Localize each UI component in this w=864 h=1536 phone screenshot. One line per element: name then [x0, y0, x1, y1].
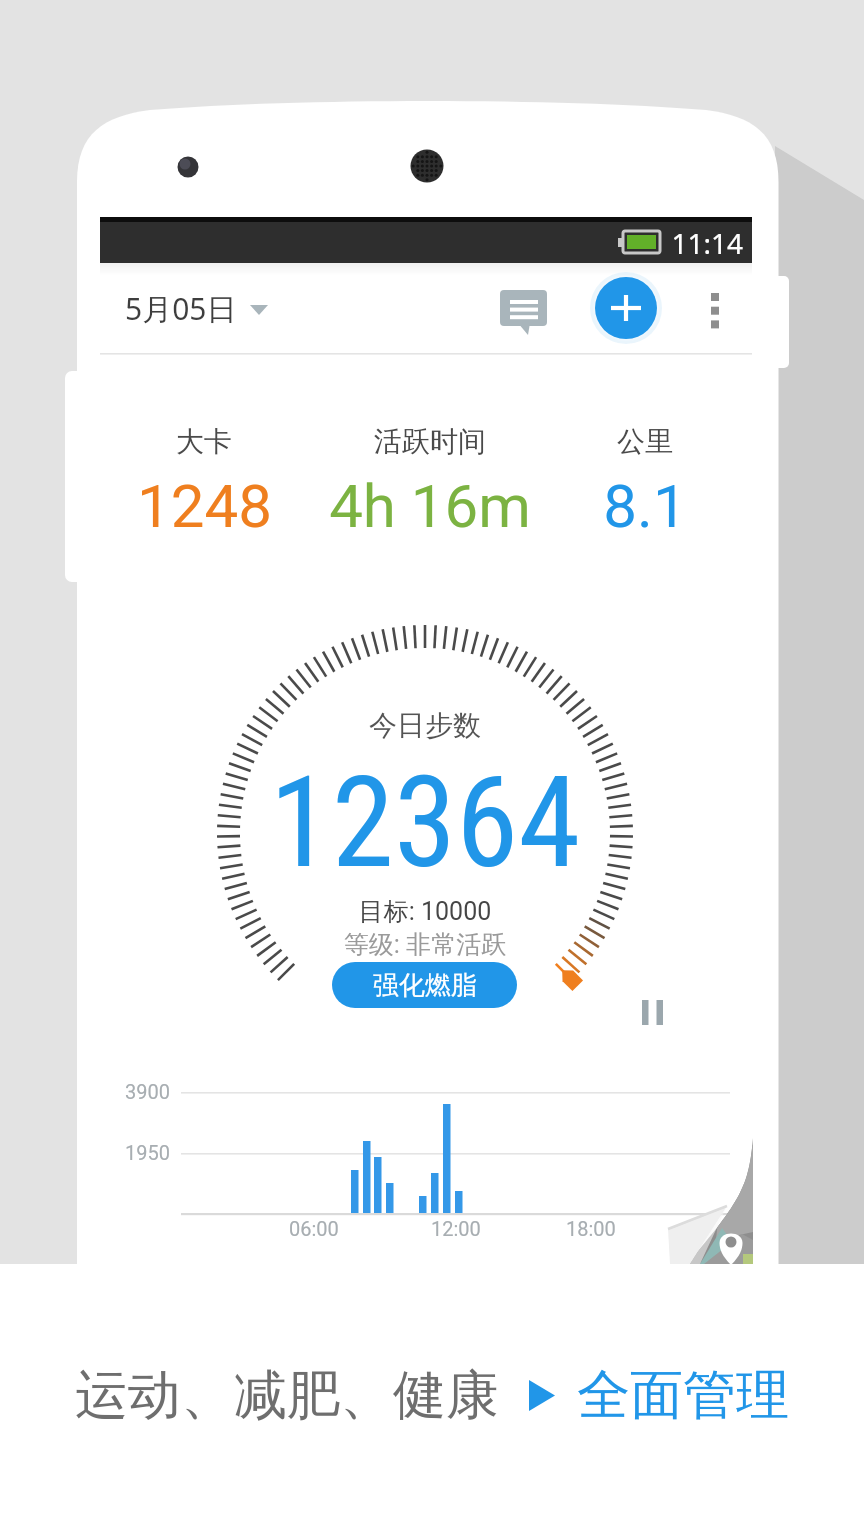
button[interactable]: Add [595, 277, 657, 339]
staticText: 1248 [137, 471, 272, 541]
staticText: 活跃时间 [374, 424, 486, 459]
staticText: 5月05日 [125, 288, 237, 329]
button[interactable]: 活跃时间 [300, 424, 560, 541]
staticText: 今日步数 [125, 708, 725, 743]
button[interactable]: 大卡 [74, 424, 334, 541]
staticText: 4h 16m [329, 471, 531, 541]
staticText: 公里 [617, 424, 673, 459]
button[interactable]: Pause [628, 986, 676, 1036]
staticText: 8.1 [603, 471, 687, 541]
button[interactable]: More options [689, 277, 741, 345]
staticText: 12:00 [431, 1217, 481, 1240]
staticText: 18:00 [566, 1217, 616, 1240]
staticText: 强化燃脂 [373, 969, 477, 1002]
staticText: 11:14 [582, 224, 743, 262]
staticText: 06:00 [289, 1217, 339, 1240]
staticText: 全面管理 [577, 1362, 789, 1429]
staticText: 大卡 [176, 424, 232, 459]
button[interactable]: 公里 [515, 424, 775, 541]
button[interactable]: 强化燃脂 [332, 962, 517, 1008]
button[interactable]: Messages [490, 280, 556, 346]
button[interactable]: 5月05日 [117, 280, 276, 337]
staticText: 目标: 10000 [125, 896, 725, 927]
staticText: 3900 [125, 1080, 170, 1103]
staticText: 12364 [125, 749, 725, 897]
staticText: 1950 [125, 1141, 170, 1164]
staticText: 等级: 非常活跃 [125, 929, 725, 960]
staticText: 运动、减肥、健康 [75, 1362, 499, 1429]
